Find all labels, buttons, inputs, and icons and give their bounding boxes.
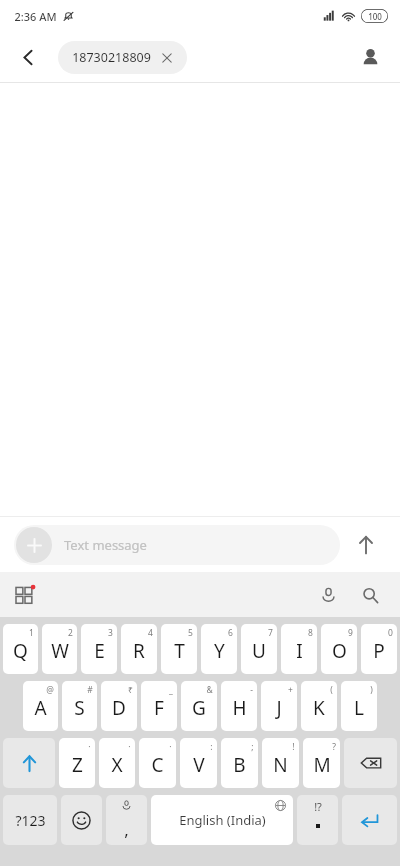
staticText: 0 <box>388 627 393 639</box>
staticText: R <box>133 638 145 664</box>
button[interactable]: 3 <box>81 624 117 674</box>
staticText: S <box>74 695 85 721</box>
button[interactable]: 5 <box>161 624 197 674</box>
staticText: Y <box>214 638 225 664</box>
button[interactable]: Symbols <box>3 795 57 845</box>
button[interactable]: Add attachment <box>14 525 340 565</box>
staticText: J <box>276 695 282 721</box>
button[interactable]: 0 <box>361 624 397 674</box>
staticText: Z <box>72 752 83 778</box>
staticText: : <box>210 741 213 753</box>
button[interactable]: ₹ <box>101 681 137 731</box>
staticText: L <box>354 695 364 721</box>
staticText: ₹ <box>128 684 133 696</box>
staticText: 9 <box>348 627 353 639</box>
staticText: X <box>111 752 123 778</box>
button[interactable]: # <box>62 681 97 731</box>
button[interactable]: ) <box>341 681 377 731</box>
staticText: K <box>313 695 325 721</box>
button[interactable]: 7 <box>241 624 277 674</box>
button[interactable]: 1 <box>3 624 38 674</box>
staticText: 8 <box>308 627 313 639</box>
staticText: G <box>192 695 206 721</box>
staticText: N <box>273 752 288 778</box>
button[interactable]: 8 <box>281 624 317 674</box>
button[interactable]: Keyboard apps <box>8 578 42 612</box>
staticText: F <box>154 695 164 721</box>
staticText: C <box>151 752 164 778</box>
staticText: H <box>232 695 247 721</box>
button[interactable]: Back <box>8 37 48 77</box>
staticText: _ <box>169 684 173 696</box>
staticText: Text message <box>64 536 147 554</box>
staticText: 2 <box>68 627 73 639</box>
staticText: & <box>206 684 213 696</box>
staticText: B <box>233 752 246 778</box>
staticText: 7 <box>268 627 273 639</box>
button[interactable]: ; <box>221 738 258 788</box>
button[interactable]: 18730218809 <box>58 41 187 74</box>
staticText: 3 <box>108 627 113 639</box>
button[interactable]: _ <box>141 681 177 731</box>
staticText: ? <box>332 741 336 753</box>
button[interactable]: + <box>261 681 297 731</box>
staticText: · <box>128 741 131 753</box>
staticText: M <box>313 752 331 778</box>
button[interactable]: - <box>221 681 257 731</box>
staticText: E <box>94 638 105 664</box>
staticText: ; <box>251 741 254 753</box>
staticText: 1 <box>29 627 34 639</box>
button[interactable]: 4 <box>121 624 157 674</box>
button[interactable]: · <box>59 738 95 788</box>
button[interactable]: · <box>99 738 135 788</box>
staticText: , <box>124 818 129 841</box>
staticText: A <box>34 695 47 721</box>
button[interactable]: @ <box>23 681 58 731</box>
staticText: 6 <box>228 627 233 639</box>
button[interactable]: Contact details <box>350 37 390 77</box>
staticText: !? <box>314 799 322 814</box>
button[interactable]: Add attachment <box>16 527 52 563</box>
button[interactable]: Space <box>151 795 293 845</box>
button[interactable]: 2 <box>42 624 77 674</box>
staticText: @ <box>46 684 54 696</box>
staticText: ?123 <box>15 811 46 830</box>
button[interactable]: ? <box>303 738 340 788</box>
staticText: 100 <box>368 11 382 22</box>
button[interactable]: 9 <box>321 624 357 674</box>
button[interactable]: 6 <box>201 624 237 674</box>
staticText: I <box>296 638 303 664</box>
button[interactable]: Send <box>340 519 392 571</box>
button[interactable]: Shift <box>3 738 55 788</box>
staticText: ) <box>370 684 373 696</box>
staticText: 4 <box>148 627 153 639</box>
staticText: Q <box>13 638 28 664</box>
button[interactable]: : <box>180 738 217 788</box>
staticText: · <box>88 741 91 753</box>
button[interactable]: ( <box>301 681 337 731</box>
button[interactable]: & <box>181 681 217 731</box>
button[interactable]: Voice input <box>310 577 346 613</box>
staticText: + <box>288 684 293 696</box>
staticText: 18730218809 <box>72 49 151 66</box>
staticText: 5 <box>188 627 193 639</box>
staticText: # <box>87 684 93 696</box>
staticText: O <box>332 638 347 664</box>
staticText: 2:36 AM <box>14 9 57 24</box>
staticText: U <box>252 638 266 664</box>
staticText: · <box>169 741 172 753</box>
staticText: W <box>51 638 69 664</box>
staticText: V <box>193 752 205 778</box>
button[interactable]: Comma <box>106 795 147 845</box>
button[interactable]: · <box>139 738 176 788</box>
staticText: English (India) <box>179 811 266 829</box>
button[interactable]: Enter <box>342 795 397 845</box>
staticText: ! <box>292 741 295 753</box>
button[interactable]: Emoji <box>61 795 102 845</box>
staticText: - <box>250 684 253 696</box>
button[interactable]: Period <box>297 795 338 845</box>
button[interactable]: Backspace <box>344 738 397 788</box>
button[interactable]: Search <box>352 577 388 613</box>
button[interactable]: ! <box>262 738 299 788</box>
staticText: T <box>174 638 185 664</box>
